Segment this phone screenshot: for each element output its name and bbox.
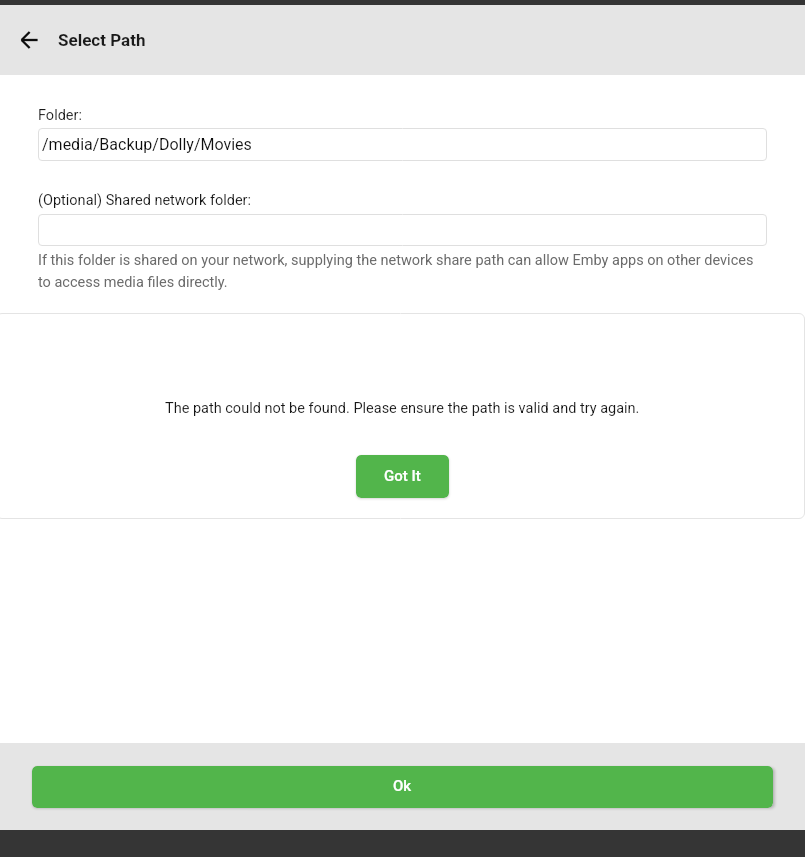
staticText: If this folder is shared on your network…	[38, 252, 767, 290]
staticText: (Optional) Shared network folder:	[38, 192, 252, 209]
staticText: Select Path	[58, 30, 146, 50]
button[interactable]: Navigate back	[8, 18, 52, 62]
button[interactable]: Ok	[32, 766, 773, 808]
staticText: Ok	[393, 777, 412, 795]
button[interactable]: Got It	[356, 455, 449, 498]
staticText: /media/Backup/Dolly/Movies	[42, 135, 252, 154]
staticText: Folder:	[38, 107, 82, 124]
button[interactable]: /media/Backup/Dolly/Movies	[38, 128, 767, 161]
staticText: The path could not be found. Please ensu…	[165, 400, 640, 417]
staticText: Got It	[384, 467, 421, 485]
button[interactable]: Shared network folder input	[38, 214, 767, 246]
